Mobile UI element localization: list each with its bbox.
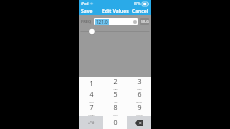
staticText: 8 <box>113 103 118 113</box>
staticText: 1 <box>89 79 94 89</box>
button[interactable]: Symbols <box>79 116 103 129</box>
button[interactable]: 1 <box>79 77 103 90</box>
button[interactable]: 6 <box>127 90 151 103</box>
staticText: DEF <box>137 87 142 90</box>
button[interactable]: 0 <box>103 116 127 129</box>
staticText: WXYZ <box>136 113 143 116</box>
staticText: 0 <box>113 118 118 128</box>
button[interactable] <box>79 27 151 36</box>
staticText: Edit Values <box>102 8 129 15</box>
staticText: 5 <box>113 90 118 100</box>
button[interactable]: 7 <box>79 103 103 116</box>
button[interactable]: 9 <box>127 103 151 116</box>
staticText: 121.0 <box>96 19 108 25</box>
button[interactable]: 5 <box>103 90 127 103</box>
staticText: Cancel <box>132 8 149 15</box>
staticText: TUV <box>113 113 118 116</box>
staticText: 6 <box>137 90 142 100</box>
staticText: 2 <box>113 77 118 87</box>
button[interactable]: Delete <box>127 116 151 129</box>
staticText: ABC <box>113 87 118 90</box>
staticText: GHI <box>89 100 94 103</box>
button[interactable]: 4 <box>79 90 103 103</box>
staticText: 9 <box>137 103 142 113</box>
button[interactable]: 121.0 <box>94 18 138 25</box>
button[interactable]: SR-G <box>140 18 149 25</box>
staticText: 3 <box>137 77 142 87</box>
staticText: FREQ <box>81 19 92 24</box>
button[interactable]: 8 <box>103 103 127 116</box>
staticText: iPod <box>81 1 89 6</box>
staticText: 87% <box>134 2 141 6</box>
button[interactable]: Cancel <box>132 7 149 15</box>
staticText: PQRS <box>88 113 95 116</box>
staticText: SR-G <box>141 19 149 24</box>
button[interactable]: 2 <box>103 77 127 90</box>
staticText: 4 <box>89 90 94 100</box>
staticText: 7 <box>89 103 94 113</box>
button[interactable]: Clear text <box>133 20 137 24</box>
staticText: JKL <box>114 100 118 103</box>
staticText: MNO <box>136 100 142 103</box>
staticText: +*# <box>88 120 95 125</box>
button[interactable]: Save <box>81 7 93 15</box>
staticText: Save <box>81 8 93 15</box>
button[interactable]: 3 <box>127 77 151 90</box>
